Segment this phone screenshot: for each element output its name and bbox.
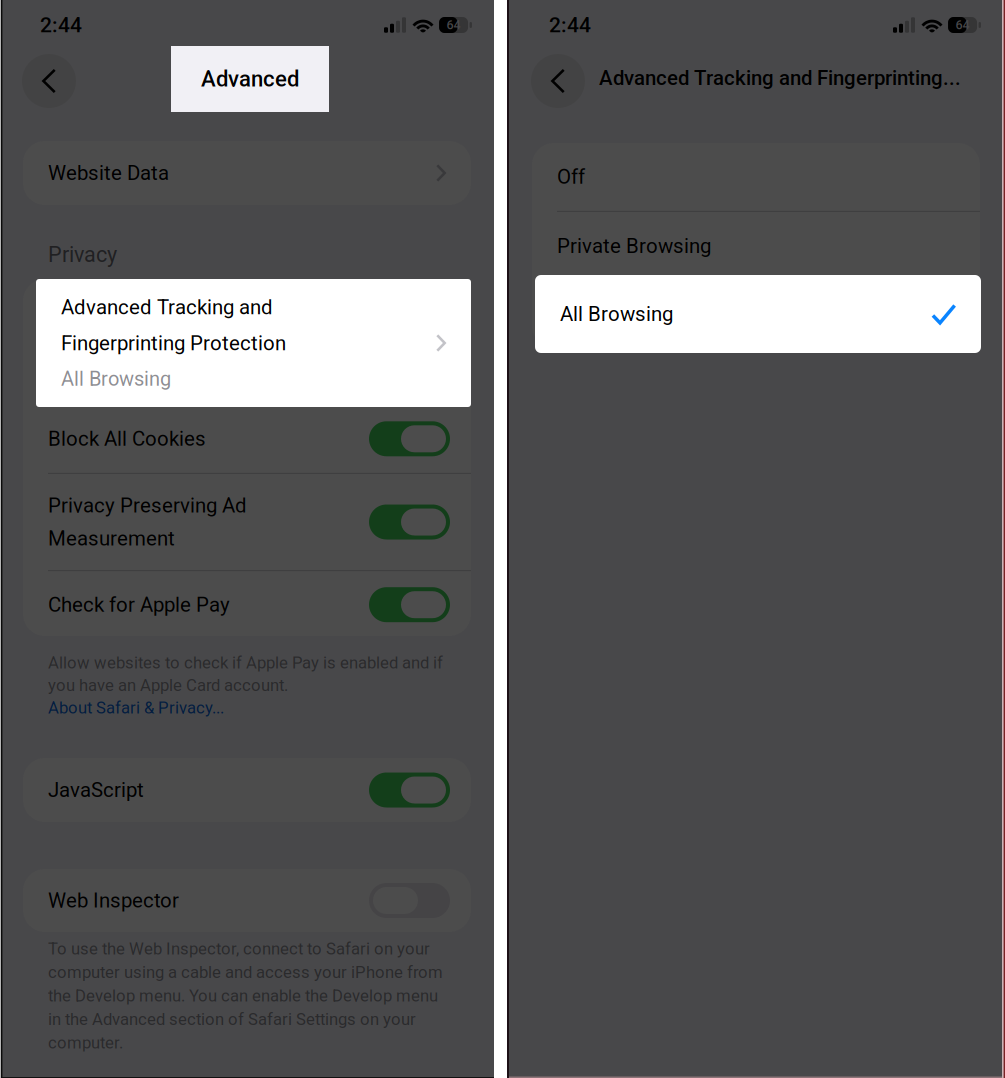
staticText: Off: [557, 165, 585, 189]
staticText: Privacy Preserving Ad: [48, 494, 247, 517]
button[interactable]: Private Browsing: [532, 212, 980, 280]
staticText: All Browsing: [61, 367, 171, 391]
button[interactable]: Block All Cookies: [23, 405, 471, 473]
staticText: Privacy: [48, 242, 117, 267]
staticText: All Browsing: [560, 302, 673, 326]
staticText: Block All Cookies: [48, 427, 206, 451]
staticText: the Develop menu. You can enable the Dev…: [48, 986, 438, 1006]
staticText: 64: [447, 18, 461, 32]
button[interactable]: Back: [531, 54, 585, 108]
button[interactable]: Off: [532, 143, 980, 211]
staticText: Private Browsing: [557, 234, 711, 258]
button[interactable]: All Browsing: [535, 275, 981, 353]
button[interactable]: Privacy Preserving Ad: [23, 474, 471, 570]
staticText: 64: [955, 18, 969, 32]
staticText: To use the Web Inspector, connect to Saf…: [48, 939, 430, 958]
staticText: Advanced: [198, 67, 296, 93]
staticText: you have an Apple Card account.: [48, 675, 288, 695]
button[interactable]: Web Inspector: [23, 869, 471, 932]
button[interactable]: About Safari & Privacy...: [48, 698, 224, 718]
staticText: in the Advanced section of Safari Settin…: [48, 1010, 416, 1029]
staticText: Fingerprinting Protection: [61, 331, 286, 355]
button[interactable]: All Browsing: [532, 281, 980, 348]
staticText: Measurement: [48, 526, 175, 550]
button[interactable]: JavaScript: [23, 758, 471, 822]
staticText: Advanced Tracking and: [48, 293, 260, 317]
button[interactable]: Back: [22, 54, 76, 108]
button[interactable]: Advanced: [171, 46, 329, 112]
staticText: Website Data: [48, 161, 169, 185]
staticText: Check for Apple Pay: [48, 593, 230, 617]
staticText: Web Inspector: [48, 888, 179, 912]
button[interactable]: Advanced Tracking and: [23, 277, 471, 405]
staticText: Advanced Tracking and Fingerprinting...: [599, 66, 961, 90]
staticText: About Safari & Privacy...: [48, 698, 224, 718]
staticText: All Browsing: [48, 365, 158, 388]
staticText: Allow websites to check if Apple Pay is …: [48, 653, 443, 672]
button[interactable]: Advanced Tracking and: [36, 279, 471, 407]
staticText: All Browsing: [557, 303, 670, 327]
staticText: Advanced: [201, 66, 299, 92]
button[interactable]: Check for Apple Pay: [23, 571, 471, 638]
staticText: 2:44: [40, 13, 82, 37]
staticText: 2:44: [549, 13, 591, 37]
staticText: Fingerprinting Protection: [48, 329, 273, 353]
button[interactable]: Website Data: [23, 141, 471, 205]
staticText: computer using a cable and access your i…: [48, 962, 443, 982]
staticText: computer.: [48, 1033, 123, 1053]
staticText: JavaScript: [48, 778, 144, 802]
staticText: Advanced Tracking and: [61, 295, 273, 319]
